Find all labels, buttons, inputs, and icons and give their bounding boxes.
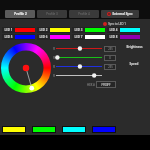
staticText: Profile 2 xyxy=(14,12,27,16)
button[interactable]: LED 4 xyxy=(107,27,140,33)
staticText: R xyxy=(52,56,56,60)
staticText: HEX # xyxy=(87,83,95,87)
staticText: Brightness xyxy=(126,45,143,49)
staticText: Sync to LED 1 xyxy=(108,22,126,26)
staticText: LED 8 xyxy=(109,35,118,39)
staticText: LED 1 xyxy=(4,28,13,32)
staticText: FF00FF xyxy=(101,83,111,87)
button[interactable]: LED 1 xyxy=(2,27,35,33)
staticText: Profile 3 xyxy=(46,12,58,16)
staticText: R xyxy=(52,65,56,69)
button[interactable]: Color wheel xyxy=(1,43,51,93)
button[interactable]: 255 xyxy=(104,46,116,52)
button[interactable]: LED 6 xyxy=(37,34,70,40)
button[interactable]: Preset colour xyxy=(2,126,26,133)
staticText: LED 5 xyxy=(4,35,13,39)
staticText: LED 4 xyxy=(109,28,118,32)
staticText: 255 xyxy=(108,65,113,69)
staticText: R xyxy=(52,74,56,78)
staticText: External Sync xyxy=(112,12,133,16)
button[interactable]: R xyxy=(52,44,116,53)
button[interactable]: Preset colour xyxy=(32,126,56,133)
button[interactable]: LED 7 xyxy=(72,34,105,40)
button[interactable]: Profile 3 xyxy=(37,10,67,18)
button[interactable]: Preset colour xyxy=(92,126,116,133)
button[interactable]: FF00FF xyxy=(96,81,116,88)
button[interactable]: Profile 2 xyxy=(5,10,35,18)
button[interactable]: External Sync xyxy=(101,10,139,18)
button[interactable]: LED 8 xyxy=(107,34,140,40)
button[interactable]: R xyxy=(52,62,116,71)
button[interactable]: LED 5 xyxy=(2,34,35,40)
staticText: Speed xyxy=(129,62,139,66)
staticText: R xyxy=(52,47,56,51)
staticText: LED 2 xyxy=(39,28,48,32)
button[interactable]: Preset colour xyxy=(62,126,86,133)
button[interactable]: R xyxy=(52,71,116,80)
staticText: 0 xyxy=(109,56,111,60)
button[interactable]: LED 3 xyxy=(72,27,105,33)
staticText: Profile 4 xyxy=(78,12,90,16)
button[interactable]: Profile 4 xyxy=(69,10,99,18)
staticText: 255 xyxy=(108,47,113,51)
staticText: LED 3 xyxy=(74,28,83,32)
button[interactable]: 255 xyxy=(104,64,116,70)
button[interactable]: LED 2 xyxy=(37,27,70,33)
button[interactable]: 0 xyxy=(104,55,116,61)
staticText: LED 7 xyxy=(74,35,83,39)
staticText: LED 6 xyxy=(39,35,48,39)
button[interactable]: R xyxy=(52,53,116,62)
